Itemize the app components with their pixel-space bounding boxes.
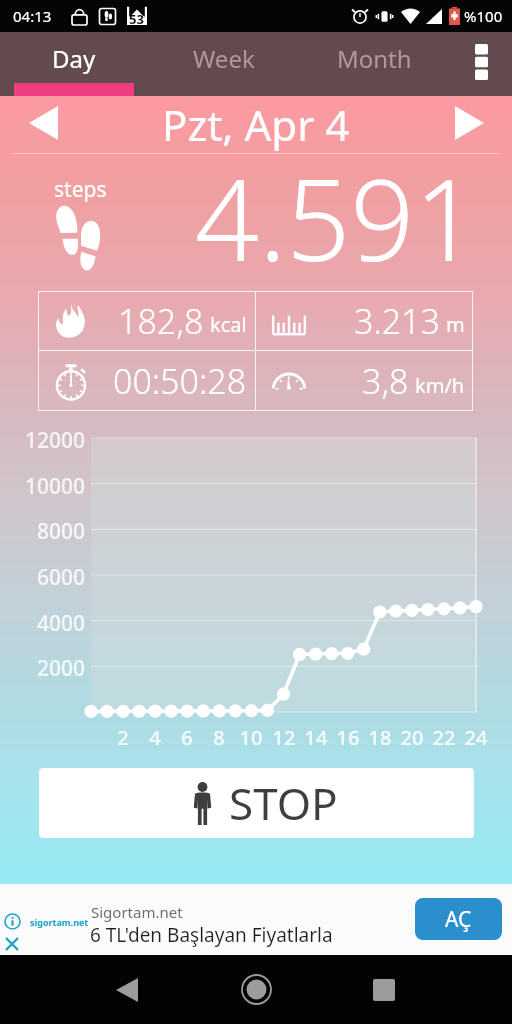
button[interactable]: Previous day: [0, 91, 86, 155]
staticText: steps: [54, 175, 107, 204]
button[interactable]: Next day: [426, 91, 512, 155]
button[interactable]: Week: [148, 32, 299, 96]
staticText: 00:50:28: [113, 358, 247, 404]
staticText: 12: [268, 724, 300, 751]
staticText: 4: [139, 724, 171, 751]
button[interactable]: More options: [450, 32, 512, 96]
staticText: 4000: [0, 609, 85, 638]
button[interactable]: 3,8: [256, 351, 473, 411]
staticText: 8: [203, 724, 235, 751]
staticText: Pzt, Apr 4: [162, 96, 350, 153]
staticText: 10: [235, 724, 267, 751]
staticText: 3.213: [354, 298, 440, 344]
button[interactable]: Recents: [353, 955, 415, 1024]
staticText: 18: [364, 724, 396, 751]
button[interactable]: Month: [299, 32, 450, 96]
staticText: 6 TL'den Başlayan Fiyatlarla: [90, 922, 333, 948]
staticText: 2000: [0, 654, 85, 683]
staticText: 3,8: [362, 358, 409, 404]
button[interactable]: Back: [96, 955, 158, 1024]
staticText: 182,8: [118, 298, 204, 344]
staticText: 6000: [0, 563, 85, 592]
button[interactable]: Day: [0, 32, 148, 96]
button[interactable]: 182,8: [38, 291, 255, 350]
staticText: 14: [300, 724, 332, 751]
button[interactable]: Ad info: [4, 913, 21, 930]
staticText: 2: [107, 724, 139, 751]
staticText: 20: [396, 724, 428, 751]
staticText: 22: [428, 724, 460, 751]
staticText: STOP: [229, 773, 338, 833]
staticText: m: [446, 311, 465, 338]
staticText: 4.591: [195, 141, 479, 266]
staticText: %100: [464, 6, 503, 26]
staticText: 24: [460, 724, 492, 751]
staticText: Day: [52, 42, 96, 75]
staticText: Week: [193, 42, 255, 75]
staticText: kcal: [210, 311, 247, 338]
button[interactable]: AÇ: [415, 898, 502, 940]
staticText: 12000: [0, 426, 85, 455]
staticText: Sigortam.net: [91, 902, 183, 922]
staticText: Month: [337, 42, 412, 75]
staticText: km/h: [415, 372, 465, 399]
button[interactable]: 3.213: [256, 291, 473, 350]
button[interactable]: Close ad: [4, 936, 20, 952]
staticText: 8000: [0, 517, 85, 546]
button[interactable]: Home: [225, 955, 287, 1024]
staticText: 04:13: [13, 6, 52, 26]
staticText: 10000: [0, 472, 85, 501]
button[interactable]: 00:50:28: [38, 351, 255, 411]
staticText: 16: [332, 724, 364, 751]
button[interactable]: STOP: [39, 768, 474, 838]
staticText: sigortam.net: [30, 916, 89, 928]
staticText: 53: [129, 10, 144, 28]
staticText: 6: [171, 724, 203, 751]
staticText: AÇ: [445, 905, 472, 934]
